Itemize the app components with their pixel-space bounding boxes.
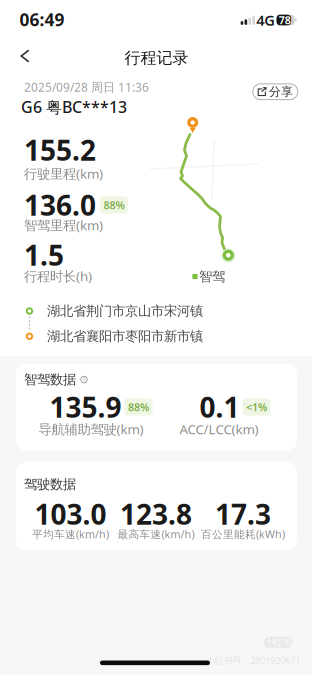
staticText: 103.0 <box>34 495 106 533</box>
staticText: 智驾 <box>199 268 225 285</box>
button[interactable]: Back <box>13 44 37 68</box>
staticText: <1% <box>246 400 267 414</box>
staticText: 行驶里程(km) <box>24 165 103 182</box>
staticText: 行程记录 <box>124 48 188 68</box>
staticText: 小红书 <box>265 637 292 648</box>
staticText: 平均车速(km/h) <box>32 527 109 541</box>
staticText: ? <box>83 376 85 383</box>
staticText: 智驾里程(km) <box>24 216 103 234</box>
staticText: 小红书号：2801920671 <box>205 654 300 666</box>
staticText: 2025/09/28 周日 11:36 <box>24 79 149 95</box>
staticText: 78 <box>279 13 291 27</box>
staticText: 湖北省荆门市京山市宋河镇 <box>47 303 203 319</box>
staticText: 136.0 <box>24 186 96 224</box>
staticText: 135.9 <box>49 388 121 426</box>
staticText: 行程时长(h) <box>24 267 92 285</box>
staticText: 123.8 <box>120 495 192 533</box>
staticText: 0.1 <box>199 388 239 426</box>
staticText: G6 粤BC***13 <box>21 96 127 117</box>
staticText: 驾驶数据 <box>24 476 76 492</box>
button[interactable]: 智驾数据说明 <box>80 375 88 383</box>
staticText: 17.3 <box>215 495 271 533</box>
staticText: 1.5 <box>24 236 64 274</box>
staticText: 06:49 <box>19 8 64 31</box>
staticText: 湖北省襄阳市枣阳市新市镇 <box>47 328 203 344</box>
staticText: 分享 <box>269 84 293 99</box>
staticText: 最高车速(km/h) <box>117 527 194 541</box>
staticText: 导航辅助驾驶(km) <box>38 420 143 438</box>
button[interactable]: 分享 <box>253 84 298 100</box>
staticText: 百公里能耗(kWh) <box>201 527 285 541</box>
staticText: ACC/LCC(km) <box>179 420 258 438</box>
staticText: 智驾数据 <box>24 371 76 388</box>
staticText: 155.2 <box>24 131 96 169</box>
staticText: 88% <box>128 400 149 414</box>
staticText: 4G <box>256 10 275 30</box>
staticText: 88% <box>103 198 124 212</box>
